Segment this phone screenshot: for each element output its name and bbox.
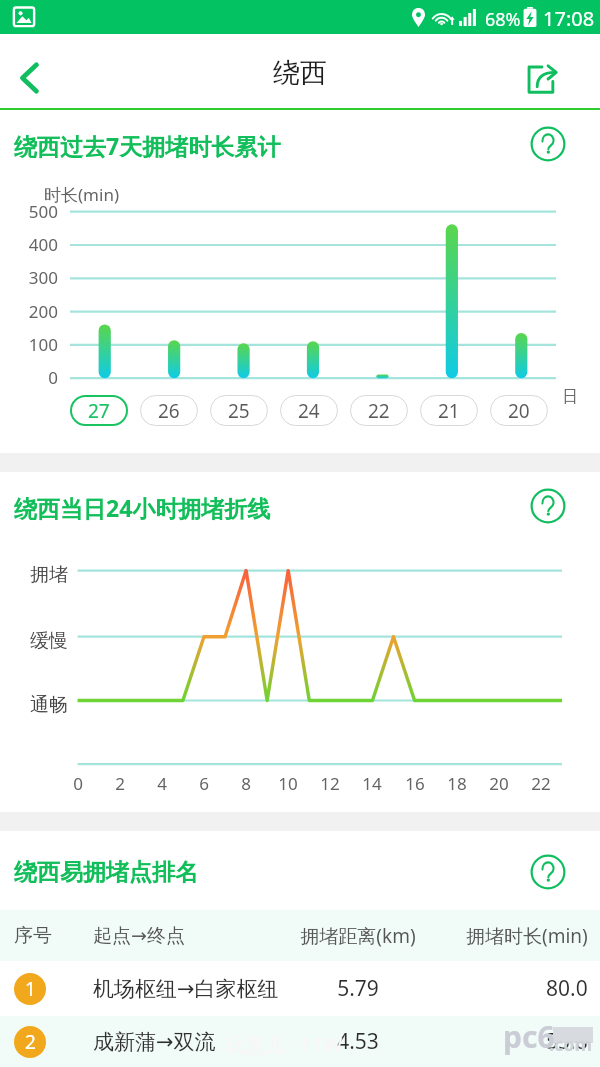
button[interactable]: Help — [530, 488, 566, 524]
staticText: 0 — [58, 772, 98, 795]
staticText: 1 — [25, 976, 36, 1002]
button[interactable]: 20 — [490, 395, 548, 426]
staticText: 18 — [437, 772, 477, 795]
staticText: 机场枢纽→白家枢纽 — [93, 976, 279, 1002]
staticText: 20 — [508, 398, 530, 424]
staticText: 16 — [395, 772, 435, 795]
button[interactable]: 26 — [140, 395, 198, 426]
staticText: 0 — [0, 366, 58, 389]
staticText: 通畅 — [30, 693, 68, 717]
button[interactable]: 24 — [280, 395, 338, 426]
staticText: 21 — [438, 398, 460, 424]
staticText: 55.8 — [546, 1027, 588, 1056]
staticText: 400 — [0, 233, 58, 256]
staticText: 日 — [562, 387, 578, 407]
button[interactable]: Back — [0, 42, 58, 100]
staticText: 200 — [0, 300, 58, 323]
staticText: 5.79 — [293, 974, 423, 1003]
staticText: 绕西 — [273, 56, 327, 90]
staticText: 起点→终点 — [93, 924, 185, 948]
staticText: 14 — [352, 772, 392, 795]
staticText: 22 — [368, 398, 390, 424]
staticText: 序号 — [14, 924, 52, 948]
button[interactable]: Help — [530, 126, 566, 162]
staticText: 绕西当日24小时拥堵折线 — [14, 492, 271, 523]
staticText: 6 — [184, 772, 224, 795]
staticText: 2 — [25, 1029, 36, 1055]
staticText: 12 — [310, 772, 350, 795]
staticText: 20 — [479, 772, 519, 795]
button[interactable]: 22 — [350, 395, 408, 426]
staticText: 缓慢 — [30, 629, 68, 653]
staticText: 17:08 — [543, 5, 595, 32]
button[interactable]: 2 — [0, 1016, 600, 1067]
staticText: 25 — [228, 398, 250, 424]
button[interactable]: 1 — [0, 961, 600, 1016]
staticText: 绕西过去7天拥堵时长累计 — [14, 130, 281, 161]
staticText: 80.0 — [546, 974, 588, 1003]
staticText: 玩意儿 · 11W — [225, 1031, 343, 1058]
staticText: 拥堵 — [30, 563, 68, 587]
button[interactable]: 27 — [70, 395, 128, 426]
staticText: 300 — [0, 266, 58, 289]
staticText: 100 — [0, 333, 58, 356]
button[interactable]: Help — [530, 854, 566, 890]
staticText: 2 — [100, 772, 140, 795]
staticText: 24 — [298, 398, 320, 424]
staticText: 成新蒲→双流 — [93, 1029, 216, 1055]
staticText: pc6 — [503, 1016, 555, 1057]
staticText: 26 — [158, 398, 180, 424]
staticText: 绕西易拥堵点排名 — [14, 858, 198, 887]
staticText: 4 — [142, 772, 182, 795]
staticText: .com — [549, 1032, 593, 1057]
button[interactable]: 25 — [210, 395, 268, 426]
staticText: 22 — [521, 772, 561, 795]
staticText: 68% — [485, 7, 521, 32]
button[interactable]: Share — [542, 42, 600, 100]
staticText: 8 — [226, 772, 266, 795]
staticText: 拥堵时长(min) — [466, 923, 588, 949]
staticText: 27 — [88, 398, 110, 424]
staticText: 500 — [0, 200, 58, 223]
staticText: 4.53 — [293, 1027, 423, 1056]
staticText: 时长(min) — [44, 183, 119, 206]
staticText: 10 — [268, 772, 308, 795]
staticText: 拥堵距离(km) — [293, 923, 423, 949]
button[interactable]: 21 — [420, 395, 478, 426]
